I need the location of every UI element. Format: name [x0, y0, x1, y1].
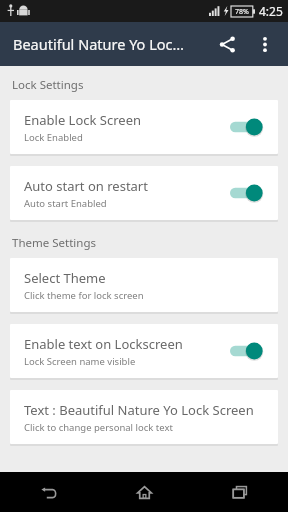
button[interactable]: Toggle [230, 341, 264, 361]
staticText: Lock Settings [12, 77, 84, 93]
button[interactable]: Text : Beautiful Nature Yo Lock Screen [10, 390, 278, 444]
staticText: Enable Lock Screen [24, 111, 142, 129]
staticText: Auto start Enabled [24, 197, 107, 210]
staticText: Click theme for lock screen [24, 289, 144, 302]
button[interactable]: Select Theme [10, 258, 278, 312]
staticText: Click to change personal lock text [24, 421, 173, 434]
staticText: Lock Enabled [24, 131, 83, 144]
staticText: Select Theme [24, 269, 106, 287]
button[interactable]: Toggle [230, 183, 264, 203]
staticText: Enable text on Lockscreen [24, 335, 183, 353]
staticText: 4:25 [259, 3, 283, 19]
button[interactable]: Enable text on Lockscreen [10, 324, 278, 378]
staticText: Auto start on restart [24, 177, 148, 195]
staticText: 78% [235, 7, 249, 17]
staticText: Beautiful Nature Yo Loc… [13, 34, 203, 54]
button[interactable]: Enable Lock Screen [10, 100, 278, 154]
button[interactable]: Share [210, 27, 244, 61]
staticText: Text : Beautiful Nature Yo Lock Screen [24, 401, 254, 419]
button[interactable]: Home [96, 472, 192, 512]
staticText: Lock Screen name visible [24, 355, 136, 368]
button[interactable]: Auto start on restart [10, 166, 278, 220]
button[interactable]: Toggle [230, 117, 264, 137]
button[interactable]: More options [250, 29, 280, 59]
button[interactable]: Back [0, 472, 96, 512]
staticText: Theme Settings [12, 235, 96, 251]
button[interactable]: Recent apps [192, 472, 288, 512]
